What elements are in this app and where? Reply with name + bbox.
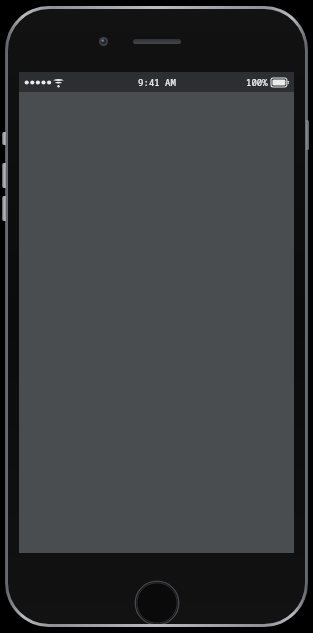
staticText: 100% xyxy=(246,76,268,88)
button[interactable]: Side button xyxy=(2,163,6,188)
staticText: 9:41 AM xyxy=(138,76,176,88)
button[interactable]: Power xyxy=(306,120,309,150)
button[interactable]: Side button xyxy=(2,132,6,145)
button[interactable]: Home xyxy=(134,580,180,624)
button[interactable]: Side button xyxy=(2,196,6,221)
